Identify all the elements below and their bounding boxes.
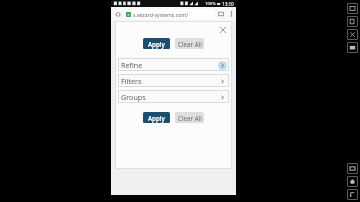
- staticText: Clear All: [178, 40, 202, 48]
- button[interactable]: Apply: [143, 38, 170, 49]
- button[interactable]: Home: [111, 7, 124, 21]
- staticText: 13:10: [222, 1, 234, 7]
- button[interactable]: Close: [217, 24, 229, 36]
- button[interactable]: Clear All: [175, 112, 204, 123]
- button[interactable]: Apply: [143, 112, 170, 123]
- staticText: 100%: [205, 1, 216, 7]
- staticText: s.wizard-systems.com/: [133, 11, 189, 18]
- button[interactable]: Home: [347, 176, 358, 187]
- staticText: Groups: [121, 92, 217, 102]
- button[interactable]: Screenshot: [347, 42, 358, 53]
- button[interactable]: s.wizard-systems.com/: [124, 9, 215, 19]
- staticText: Refine: [121, 60, 217, 70]
- button[interactable]: More options: [227, 7, 236, 21]
- button[interactable]: Resize: [347, 29, 358, 40]
- button[interactable]: Groups: [118, 90, 229, 103]
- button[interactable]: Switch tabs: [215, 7, 227, 21]
- staticText: Clear All: [178, 114, 202, 122]
- button[interactable]: Refine: [118, 58, 229, 71]
- button[interactable]: Filters: [118, 74, 229, 87]
- staticText: Filters: [121, 76, 217, 86]
- button[interactable]: Rotate: [347, 16, 358, 27]
- staticText: Apply: [148, 40, 165, 48]
- button[interactable]: Back: [347, 189, 358, 200]
- button[interactable]: Recent apps: [347, 163, 358, 174]
- button[interactable]: Fullscreen: [347, 3, 358, 14]
- staticText: Apply: [148, 114, 165, 122]
- button[interactable]: Clear All: [175, 38, 204, 49]
